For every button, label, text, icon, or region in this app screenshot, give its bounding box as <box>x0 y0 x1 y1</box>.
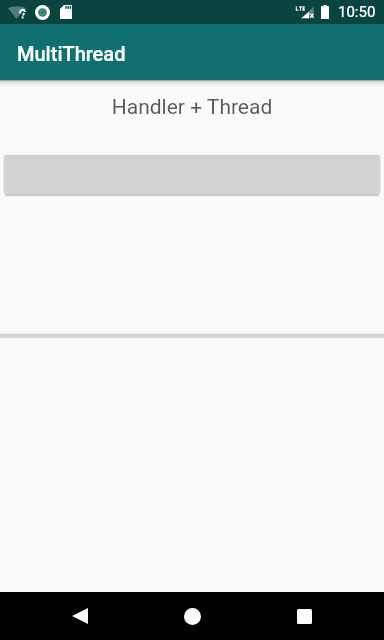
staticText: 10:50 <box>338 3 376 21</box>
button[interactable]: Back <box>24 592 136 640</box>
button[interactable]: Recent apps <box>248 592 360 640</box>
button[interactable]: Home <box>136 592 248 640</box>
staticText: Handler + Thread <box>0 95 384 120</box>
button[interactable]: Start thread <box>0 155 384 197</box>
staticText: MultiThread <box>17 42 126 65</box>
